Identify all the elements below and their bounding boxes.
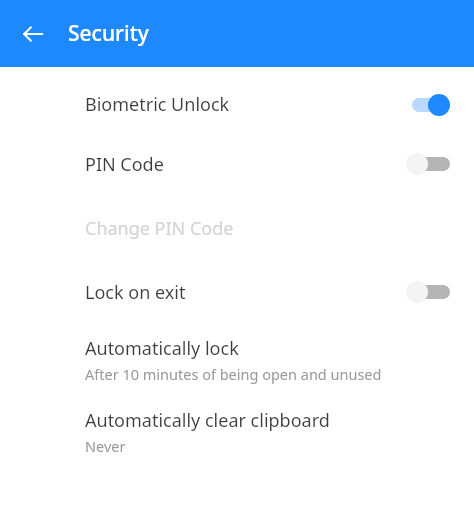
button[interactable]: Automatically clear clipboard [0, 396, 474, 468]
button[interactable]: Lock on exit [0, 260, 474, 324]
button[interactable]: Biometric Unlock [406, 88, 460, 122]
staticText: Never [85, 436, 126, 456]
button[interactable]: PIN Code [0, 132, 474, 196]
staticText: After 10 minutes of being open and unuse… [85, 364, 382, 384]
staticText: Automatically clear clipboard [85, 408, 330, 433]
button[interactable]: Automatically lock [0, 324, 474, 396]
button[interactable]: Change PIN Code [0, 196, 474, 260]
button[interactable]: Back [12, 13, 54, 55]
button[interactable]: Biometric Unlock [0, 77, 474, 132]
staticText: Automatically lock [85, 336, 239, 361]
staticText: Biometric Unlock [85, 92, 230, 117]
staticText: Change PIN Code [85, 216, 234, 241]
button[interactable]: PIN Code [406, 147, 460, 181]
staticText: PIN Code [85, 152, 164, 177]
staticText: Security [68, 19, 149, 48]
button[interactable]: Lock on exit [406, 275, 460, 309]
staticText: Lock on exit [85, 280, 186, 305]
